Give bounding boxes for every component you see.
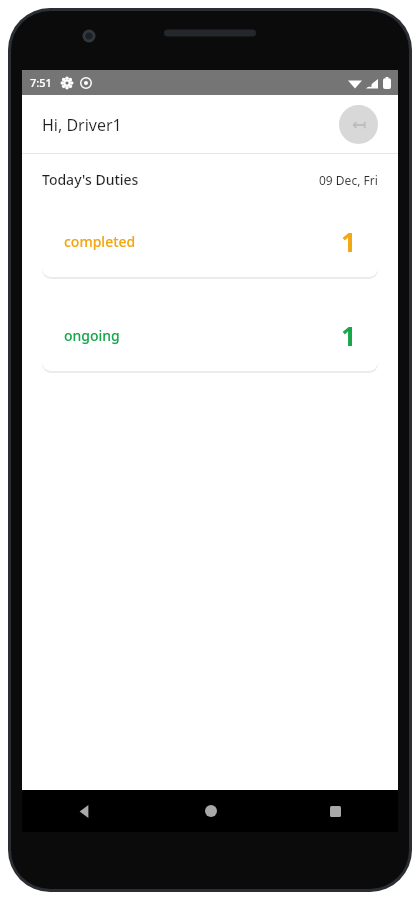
staticText: 1 (341, 224, 356, 259)
staticText: Today's Duties (42, 170, 139, 189)
staticText: completed (64, 232, 136, 251)
staticText: 09 Dec, Fri (319, 172, 378, 188)
button[interactable]: completed (42, 205, 378, 277)
button[interactable]: Profile / Log out (339, 105, 378, 144)
button[interactable]: ongoing (42, 299, 378, 371)
staticText: 1 (341, 318, 356, 353)
button[interactable]: Back (22, 790, 148, 832)
button[interactable]: Home (148, 790, 273, 832)
staticText: ongoing (64, 326, 120, 345)
button[interactable]: Recent apps (273, 790, 398, 832)
staticText: 7:51 (30, 75, 52, 90)
staticText: Hi, Driver1 (42, 114, 122, 136)
